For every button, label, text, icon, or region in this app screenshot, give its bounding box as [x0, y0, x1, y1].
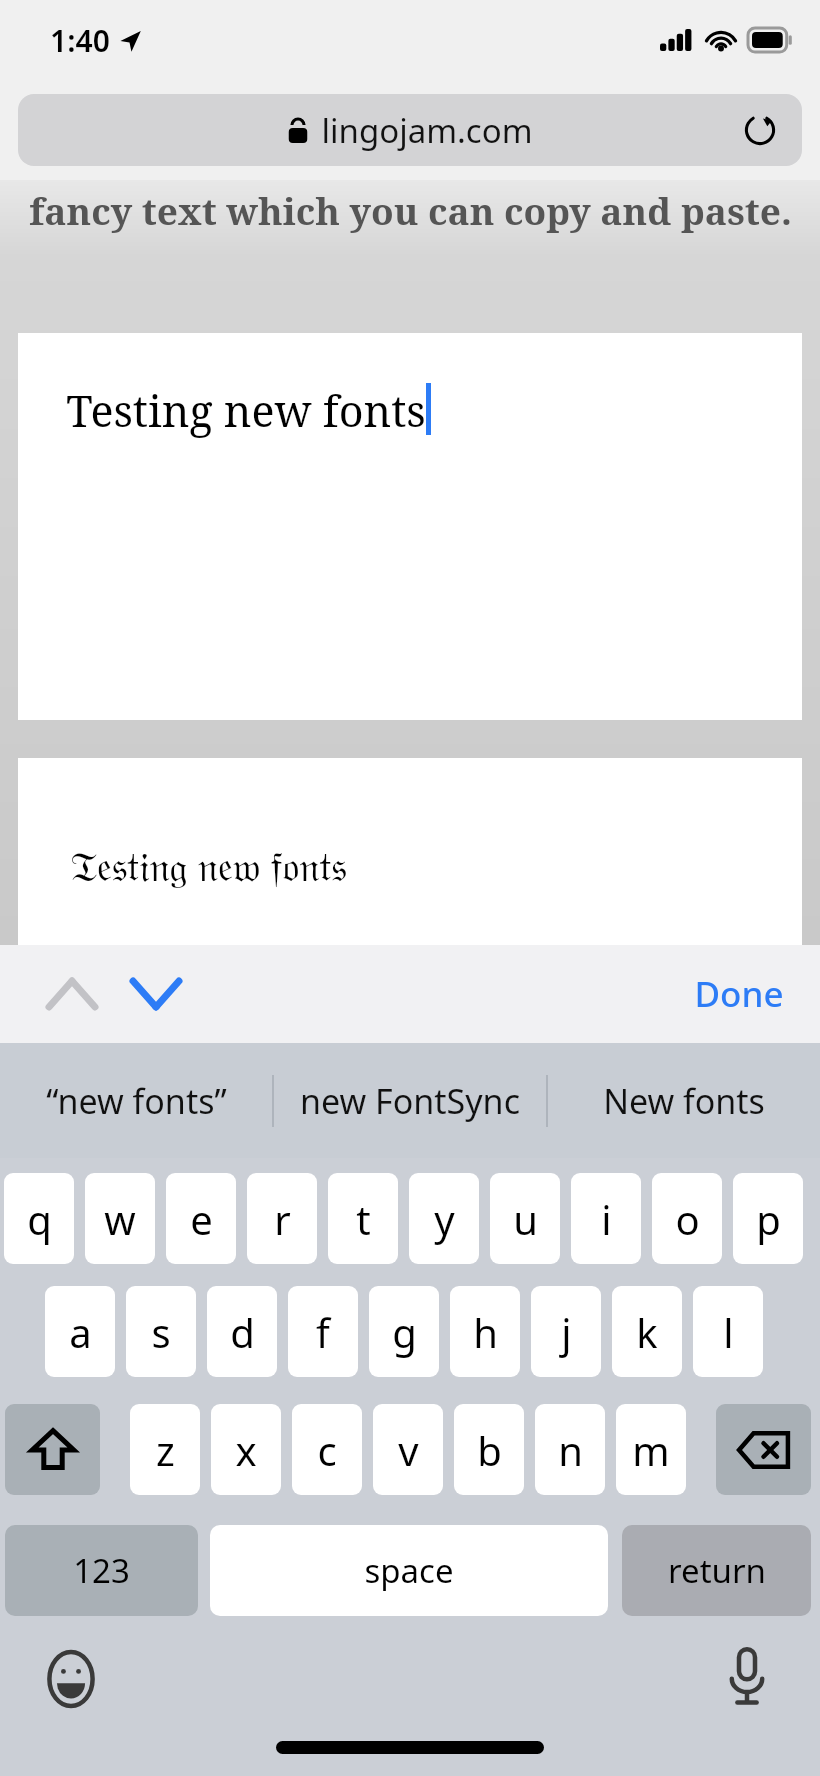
staticText: 𝔗𝔢𝔰𝔱𝔦𝔫𝔤 𝔫𝔢𝔴 𝔣𝔬𝔫𝔱𝔰: [70, 838, 347, 892]
staticText: space: [364, 1548, 454, 1593]
staticText: m: [632, 1423, 670, 1477]
button[interactable]: f: [288, 1286, 358, 1377]
button[interactable]: l: [693, 1286, 763, 1377]
button[interactable]: k: [612, 1286, 682, 1377]
button[interactable]: n: [535, 1404, 605, 1495]
staticText: s: [151, 1305, 171, 1359]
staticText: a: [69, 1305, 92, 1359]
staticText: t: [356, 1192, 371, 1246]
staticText: “new fonts”: [46, 1078, 227, 1124]
button[interactable]: x: [211, 1404, 281, 1495]
staticText: Testing new fonts: [66, 381, 426, 440]
staticText: u: [513, 1192, 538, 1246]
staticText: d: [230, 1305, 255, 1359]
button[interactable]: g: [369, 1286, 439, 1377]
staticText: f: [316, 1305, 330, 1359]
button[interactable]: y: [409, 1173, 479, 1264]
button[interactable]: Testing new fonts: [18, 333, 802, 720]
button[interactable]: s: [126, 1286, 196, 1377]
button[interactable]: Emoji: [40, 1648, 102, 1710]
button[interactable]: d: [207, 1286, 277, 1377]
button[interactable]: i: [571, 1173, 641, 1264]
button[interactable]: c: [292, 1404, 362, 1495]
button[interactable]: j: [531, 1286, 601, 1377]
button[interactable]: p: [733, 1173, 803, 1264]
button[interactable]: t: [328, 1173, 398, 1264]
staticText: l: [723, 1305, 734, 1359]
button[interactable]: Dictation: [716, 1646, 778, 1708]
button[interactable]: Done: [694, 970, 784, 1018]
button[interactable]: Reload: [738, 108, 782, 152]
button[interactable]: “new fonts”: [0, 1043, 272, 1158]
button[interactable]: Backspace: [716, 1404, 811, 1495]
staticText: fancy text which you can copy and paste.: [29, 185, 792, 235]
button[interactable]: lingojam.com: [18, 94, 802, 166]
staticText: lingojam.com: [321, 108, 533, 153]
button[interactable]: u: [490, 1173, 560, 1264]
staticText: r: [274, 1192, 291, 1246]
button[interactable]: m: [616, 1404, 686, 1495]
staticText: i: [601, 1192, 612, 1246]
button[interactable]: return: [622, 1525, 811, 1616]
staticText: Done: [694, 970, 784, 1018]
button[interactable]: v: [373, 1404, 443, 1495]
button[interactable]: h: [450, 1286, 520, 1377]
button[interactable]: Previous field: [34, 956, 110, 1032]
button[interactable]: w: [85, 1173, 155, 1264]
staticText: e: [190, 1192, 213, 1246]
staticText: c: [317, 1423, 337, 1477]
button[interactable]: 𝔗𝔢𝔰𝔱𝔦𝔫𝔤 𝔫𝔢𝔴 𝔣𝔬𝔫𝔱𝔰: [18, 758, 802, 948]
staticText: b: [477, 1423, 502, 1477]
button[interactable]: q: [4, 1173, 74, 1264]
staticText: 1:40: [50, 20, 110, 61]
button[interactable]: 123: [5, 1525, 198, 1616]
staticText: o: [675, 1192, 700, 1246]
staticText: h: [473, 1305, 498, 1359]
staticText: x: [235, 1423, 257, 1477]
button[interactable]: o: [652, 1173, 722, 1264]
button[interactable]: a: [45, 1286, 115, 1377]
staticText: z: [156, 1423, 175, 1477]
button[interactable]: Shift: [5, 1404, 100, 1495]
button[interactable]: r: [247, 1173, 317, 1264]
button[interactable]: Next field: [118, 956, 194, 1032]
button[interactable]: new FontSync: [274, 1043, 546, 1158]
staticText: y: [434, 1192, 455, 1246]
button[interactable]: b: [454, 1404, 524, 1495]
staticText: w: [104, 1192, 136, 1246]
staticText: v: [398, 1423, 419, 1477]
staticText: 123: [73, 1548, 130, 1593]
staticText: g: [392, 1305, 417, 1359]
button[interactable]: z: [130, 1404, 200, 1495]
staticText: j: [561, 1305, 572, 1359]
staticText: k: [636, 1305, 658, 1359]
staticText: New fonts: [603, 1078, 765, 1124]
button[interactable]: New fonts: [548, 1043, 820, 1158]
staticText: q: [27, 1192, 52, 1246]
button[interactable]: space: [210, 1525, 608, 1616]
button[interactable]: e: [166, 1173, 236, 1264]
staticText: new FontSync: [300, 1078, 520, 1124]
staticText: return: [668, 1548, 766, 1593]
staticText: p: [756, 1192, 781, 1246]
staticText: n: [558, 1423, 583, 1477]
